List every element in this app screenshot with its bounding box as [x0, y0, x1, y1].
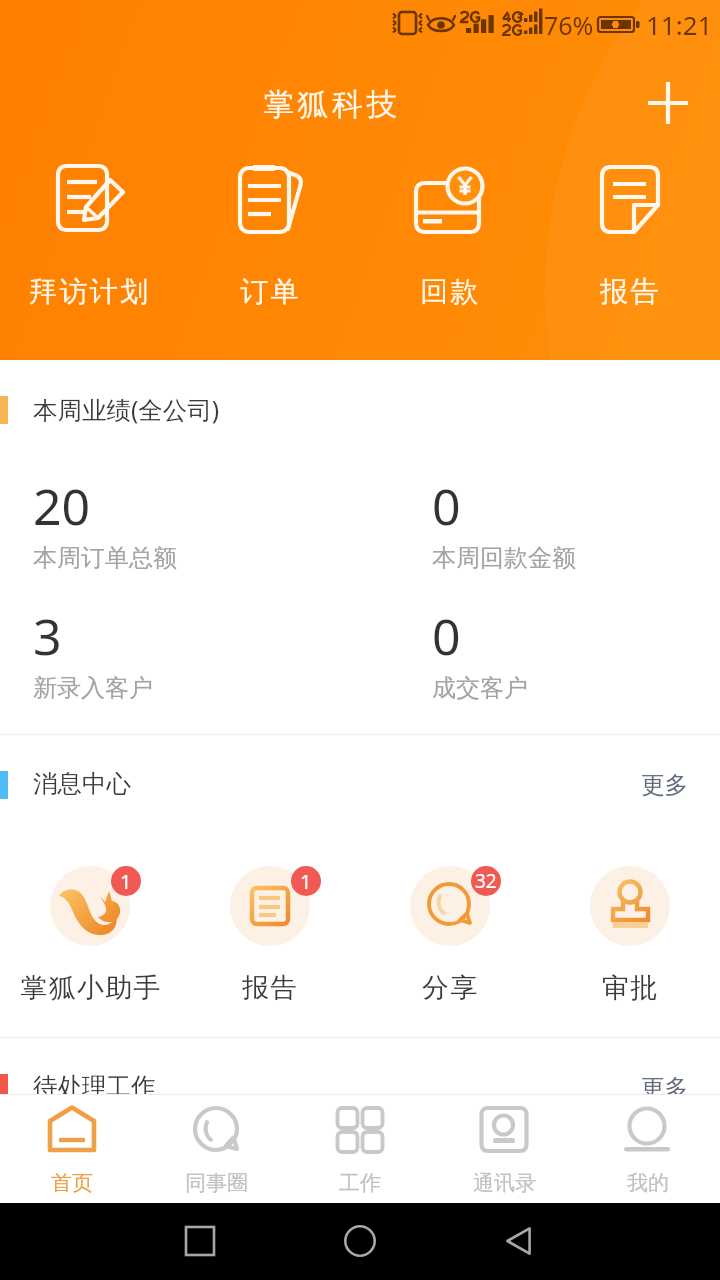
staticText: 同事圈	[185, 1170, 248, 1196]
staticText: 本周回款金额	[432, 543, 576, 573]
staticText: 更多	[641, 770, 688, 800]
button[interactable]: 审批	[540, 861, 720, 1005]
staticText: 首页	[51, 1170, 93, 1196]
button[interactable]: 报告	[540, 155, 720, 309]
button[interactable]: 1	[180, 861, 360, 1005]
button[interactable]: 回款	[360, 155, 540, 309]
button[interactable]: 20	[33, 472, 177, 570]
button[interactable]: Home	[344, 1225, 376, 1257]
staticText: 76%	[544, 8, 594, 42]
button[interactable]: 更多	[631, 1065, 698, 1111]
staticText: 0	[432, 472, 461, 540]
button[interactable]: 同事圈	[144, 1094, 288, 1203]
staticText: 掌狐科技	[263, 85, 401, 124]
staticText: 报告	[600, 274, 661, 309]
staticText: 工作	[339, 1170, 381, 1196]
staticText: 新录入客户	[33, 673, 153, 703]
button[interactable]: 我的	[576, 1094, 720, 1203]
staticText: 1	[300, 868, 312, 895]
staticText: 消息中心	[33, 768, 131, 799]
button[interactable]: 0	[432, 602, 528, 700]
staticText: 分享	[422, 971, 479, 1005]
staticText: 我的	[627, 1170, 669, 1196]
staticText: 审批	[602, 971, 659, 1005]
staticText: 1	[120, 868, 132, 895]
staticText: 11:21	[646, 7, 713, 42]
button[interactable]: 1	[0, 861, 180, 1005]
staticText: 成交客户	[432, 673, 528, 703]
button[interactable]: 工作	[288, 1094, 432, 1203]
button[interactable]: 32	[360, 861, 540, 1005]
button[interactable]: 更多	[631, 762, 698, 808]
button[interactable]: 拜访计划	[0, 155, 180, 309]
staticText: 报告	[242, 971, 299, 1005]
staticText: 回款	[420, 274, 481, 309]
button[interactable]: Recents	[184, 1225, 216, 1257]
button[interactable]: 通讯录	[432, 1094, 576, 1203]
staticText: 通讯录	[473, 1170, 536, 1196]
staticText: 本周业绩(全公司)	[33, 393, 220, 426]
staticText: 本周订单总额	[33, 543, 177, 573]
button[interactable]: 订单	[180, 155, 360, 309]
button[interactable]: 0	[432, 472, 576, 570]
staticText: 0	[432, 602, 461, 670]
staticText: 更多	[641, 1073, 688, 1103]
staticText: 20	[33, 472, 91, 540]
staticText: 订单	[240, 274, 301, 309]
staticText: 待处理工作	[33, 1071, 156, 1102]
staticText: 掌狐小助手	[20, 971, 161, 1005]
button[interactable]: 3	[33, 602, 153, 700]
staticText: 拜访计划	[29, 274, 151, 309]
button[interactable]: Back	[504, 1225, 536, 1257]
staticText: 32	[475, 868, 497, 894]
staticText: 3	[33, 602, 62, 670]
button[interactable]: Add	[638, 73, 698, 133]
button[interactable]: 首页	[0, 1094, 144, 1203]
